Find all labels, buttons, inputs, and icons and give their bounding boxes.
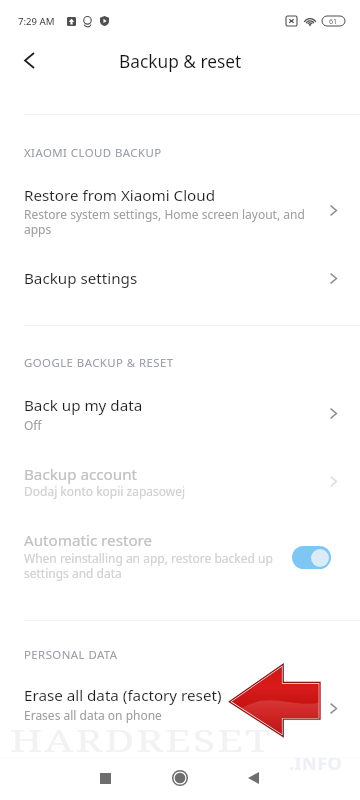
staticText: PERSONAL DATA [24, 647, 118, 663]
staticText: HARDRESET [10, 719, 273, 761]
staticText: Off [24, 417, 42, 433]
staticText: Backup account [24, 464, 138, 485]
staticText: Erases all data on phone [24, 707, 162, 723]
staticText: When reinstalling an app, restore backed… [24, 550, 286, 582]
button[interactable] [0, 524, 360, 586]
staticText: Erase all data (factory reset) [24, 685, 222, 706]
staticText: Restore system settings, Home screen lay… [24, 206, 320, 238]
staticText: GOOGLE BACKUP & RESET [24, 355, 174, 371]
button[interactable] [0, 386, 360, 440]
button[interactable]: Automatic restore [292, 546, 331, 569]
staticText: Back up my data [24, 395, 143, 416]
button[interactable] [0, 256, 360, 302]
staticText: Restore from Xiaomi Cloud [24, 185, 215, 206]
button[interactable]: Back [9, 40, 49, 80]
staticText: Backup & reset [119, 50, 242, 74]
button[interactable] [0, 176, 360, 242]
staticText: .INFO [289, 751, 343, 776]
staticText: Automatic restore [24, 530, 153, 551]
staticText: Backup settings [24, 268, 138, 289]
staticText: 61 [329, 16, 338, 26]
button[interactable]: Recent apps [83, 756, 127, 800]
button[interactable] [0, 456, 360, 508]
button[interactable]: Back [231, 756, 275, 800]
staticText: XIAOMI CLOUD BACKUP [24, 145, 162, 161]
button[interactable] [0, 678, 360, 730]
staticText: Dodaj konto kopii zapasowej [24, 483, 186, 499]
staticText: 7:29 AM [18, 15, 55, 28]
button[interactable]: Home [158, 756, 202, 800]
